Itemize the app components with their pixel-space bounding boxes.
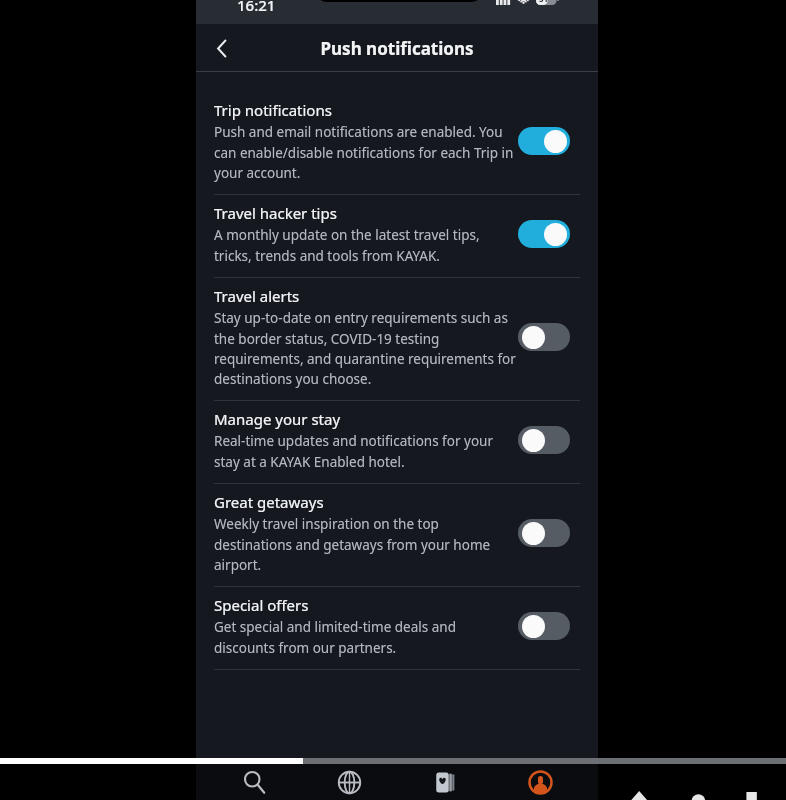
button[interactable]: Profile <box>503 764 577 800</box>
staticText: Travel hacker tips <box>214 203 337 223</box>
staticText: Great getaways <box>214 492 324 512</box>
button[interactable]: Manage your stay <box>196 401 598 483</box>
staticText: Push notifications <box>320 37 474 60</box>
staticText: Special offers <box>214 595 309 615</box>
button[interactable]: Great getaways <box>196 484 598 586</box>
button[interactable]: Enabled <box>518 126 570 156</box>
staticText: Real-time updates and notifications for … <box>214 432 516 471</box>
staticText: Travel alerts <box>214 286 300 306</box>
staticText: Trip notifications <box>214 100 332 120</box>
staticText: Get special and limited-time deals and d… <box>214 618 516 657</box>
button[interactable]: Enabled <box>518 219 570 249</box>
button[interactable]: Disabled <box>518 425 570 455</box>
staticText: Manage your stay <box>214 409 341 429</box>
button[interactable]: Search <box>217 764 291 800</box>
button[interactable]: Trips <box>408 764 482 800</box>
button[interactable]: Travel alerts <box>196 278 598 400</box>
staticText: 51 <box>539 0 549 4</box>
button[interactable]: Disabled <box>518 518 570 548</box>
staticText: A monthly update on the latest travel ti… <box>214 226 516 265</box>
staticText: 16:21 <box>237 0 276 15</box>
staticText: Stay up-to-date on entry requirements su… <box>214 309 516 388</box>
button[interactable]: Special offers <box>196 587 598 669</box>
button[interactable]: Disabled <box>518 322 570 352</box>
button[interactable]: Explore <box>312 764 386 800</box>
staticText: Push and email notifications are enabled… <box>214 123 516 182</box>
staticText: Weekly travel inspiration on the top des… <box>214 515 516 574</box>
button[interactable]: Back <box>200 26 244 70</box>
button[interactable]: Travel hacker tips <box>196 195 598 277</box>
button[interactable]: Trip notifications <box>196 92 598 194</box>
button[interactable]: Disabled <box>518 611 570 641</box>
